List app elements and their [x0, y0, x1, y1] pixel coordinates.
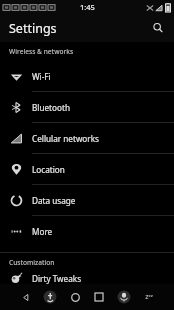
- button[interactable]: Voice search: [115, 288, 133, 306]
- button[interactable]: Back: [16, 288, 34, 306]
- staticText: Settings: [9, 20, 57, 37]
- button[interactable]: Cellular networks: [0, 123, 174, 153]
- staticText: 1:45: [80, 2, 95, 12]
- staticText: Data usage: [32, 195, 76, 206]
- button[interactable]: Location: [0, 154, 174, 184]
- staticText: Wi-Fi: [32, 71, 51, 82]
- button[interactable]: Home: [66, 288, 84, 306]
- button[interactable]: More: [0, 216, 174, 246]
- button[interactable]: Recents: [90, 288, 108, 306]
- button[interactable]: Assistant: [41, 288, 59, 306]
- button[interactable]: Dirty Tweaks: [0, 272, 174, 284]
- staticText: More: [32, 226, 53, 237]
- staticText: Dirty Tweaks: [32, 273, 82, 284]
- staticText: Location: [32, 164, 65, 175]
- button[interactable]: Data usage: [0, 185, 174, 215]
- staticText: Customization: [9, 258, 55, 267]
- staticText: Bluetooth: [32, 102, 70, 113]
- button[interactable]: Wi-Fi: [0, 61, 174, 91]
- button[interactable]: Sleep: [140, 288, 158, 306]
- staticText: zᶻᶻ: [145, 292, 153, 302]
- staticText: Cellular networks: [32, 133, 99, 144]
- button[interactable]: Search: [146, 16, 170, 40]
- staticText: Wireless & networks: [9, 47, 74, 56]
- button[interactable]: Bluetooth: [0, 92, 174, 122]
